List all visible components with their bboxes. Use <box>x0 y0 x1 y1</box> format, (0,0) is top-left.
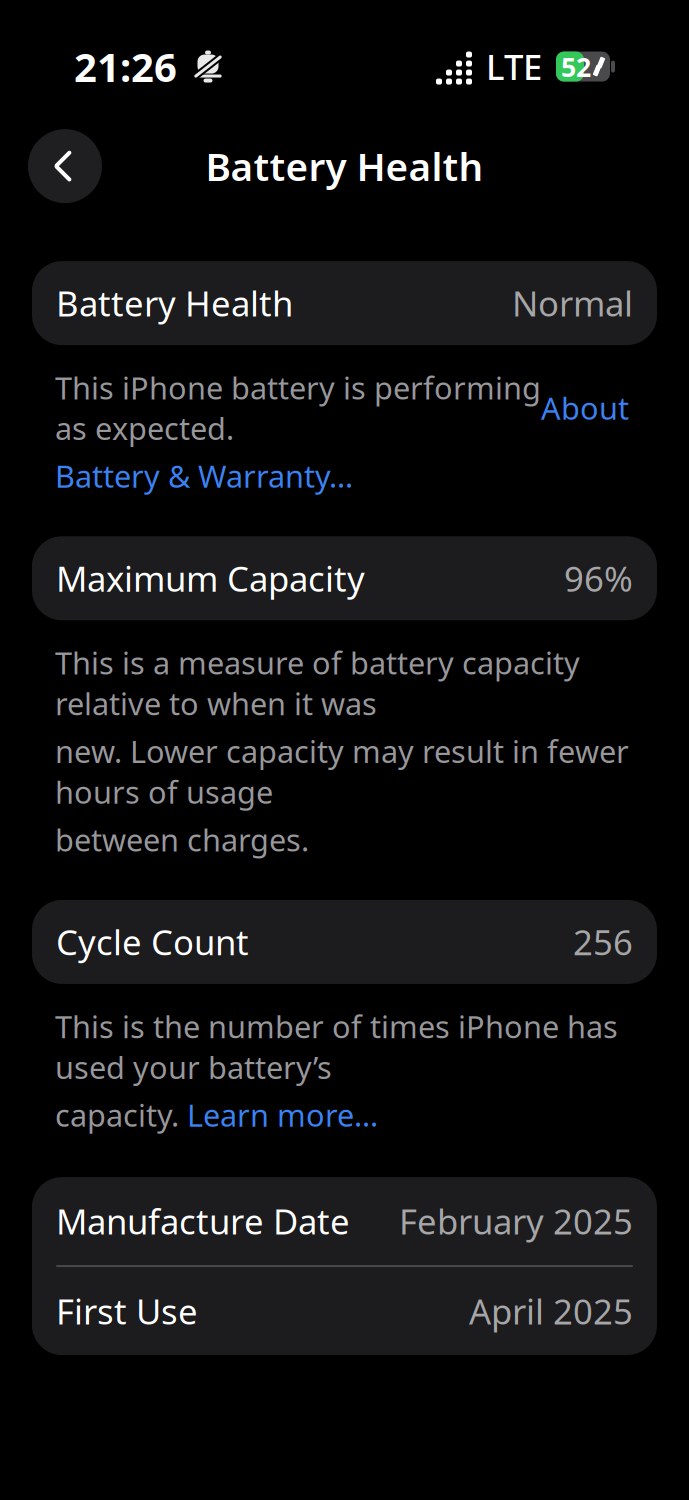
staticText: Battery Health <box>56 280 293 326</box>
button[interactable]: Cycle Count <box>0 900 689 984</box>
staticText: Battery & Warranty... <box>55 456 353 496</box>
staticText: 52 <box>561 49 591 84</box>
staticText: April 2025 <box>469 1288 633 1334</box>
staticText: This is a measure of battery capacity re… <box>55 642 580 724</box>
staticText: First Use <box>56 1288 198 1334</box>
staticText: This is the number of times iPhone has u… <box>55 1006 618 1087</box>
staticText: capacity. <box>55 1094 187 1135</box>
staticText: Learn more... <box>187 1094 378 1135</box>
button[interactable]: Manufacture Date <box>32 1177 657 1265</box>
button[interactable]: First Use <box>32 1267 657 1355</box>
staticText: new. Lower capacity may result in fewer … <box>55 731 629 812</box>
staticText: 21:26 <box>74 40 177 93</box>
staticText: 96% <box>564 555 633 601</box>
staticText: LTE <box>486 43 542 89</box>
staticText: About <box>541 387 629 428</box>
button[interactable]: Maximum Capacity <box>0 536 689 620</box>
staticText: 256 <box>573 919 633 965</box>
staticText: Battery Health <box>205 140 483 192</box>
staticText: This iPhone battery is performing as exp… <box>55 367 541 448</box>
staticText: February 2025 <box>399 1198 633 1244</box>
button[interactable]: Battery Health <box>0 261 689 345</box>
staticText: Maximum Capacity <box>56 555 365 601</box>
button[interactable]: Back <box>28 129 102 203</box>
staticText: between charges. <box>55 819 309 860</box>
staticText: Manufacture Date <box>56 1198 350 1244</box>
staticText: Normal <box>512 280 633 326</box>
staticText: Cycle Count <box>56 919 249 965</box>
